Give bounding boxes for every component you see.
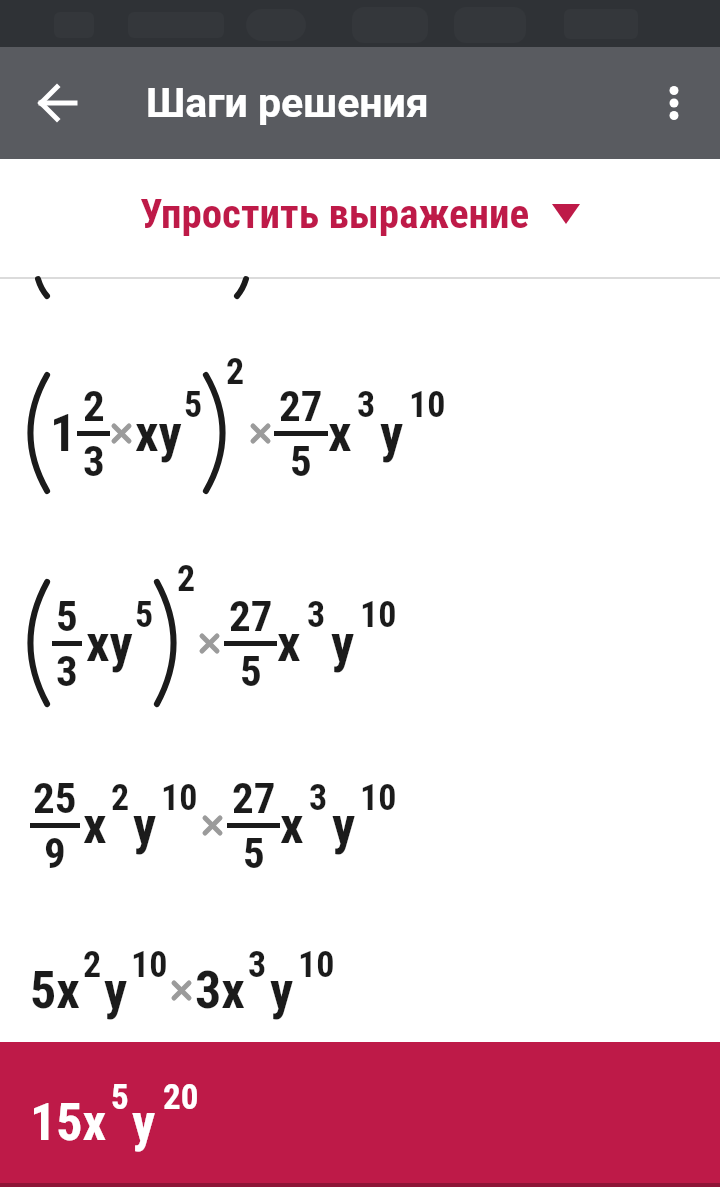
staticText: 27 [232, 773, 276, 823]
staticText: 25 [33, 773, 77, 823]
staticText: 10 [360, 777, 397, 819]
staticText: 27 [229, 591, 273, 641]
staticText: 5 [290, 436, 312, 486]
staticText: 10 [409, 384, 446, 426]
staticText: x [277, 613, 301, 674]
staticText: Упростить выражение [140, 190, 530, 238]
staticText: 3 [83, 436, 105, 486]
button[interactable] [652, 81, 696, 125]
staticText: y [380, 403, 404, 464]
staticText: x [328, 403, 352, 464]
staticText: 5 [111, 1077, 129, 1118]
staticText: 3 [309, 777, 328, 819]
staticText: 3 [248, 944, 267, 986]
staticText: Шаги решения [146, 79, 429, 127]
staticText: y [270, 960, 294, 1021]
staticText: xy [135, 403, 182, 464]
staticText: 9 [44, 828, 66, 878]
staticText: 20 [163, 1077, 199, 1118]
staticText: 10 [161, 777, 198, 819]
staticText: 10 [360, 594, 397, 636]
staticText: y [331, 613, 355, 674]
staticText: 2 [111, 777, 130, 819]
staticText: 3 [357, 384, 376, 426]
staticText: y [332, 795, 356, 856]
staticText: 10 [298, 944, 335, 986]
staticText: 3x [195, 960, 245, 1021]
staticText: y [132, 1092, 156, 1153]
staticText: 27 [279, 381, 323, 431]
staticText: 15x [30, 1092, 107, 1153]
staticText: 2 [83, 944, 102, 986]
staticText: 5 [243, 828, 265, 878]
staticText: x [83, 795, 107, 856]
staticText: 5 [184, 384, 203, 426]
staticText: 2 [83, 381, 105, 431]
staticText: 10 [131, 944, 168, 986]
staticText: 5x [30, 960, 80, 1021]
staticText: 1 [50, 403, 77, 464]
staticText: y [133, 795, 157, 856]
staticText: xy [86, 613, 133, 674]
staticText: 5 [135, 594, 154, 636]
button[interactable]: Упростить выражение [0, 183, 720, 245]
staticText: 3 [307, 594, 326, 636]
staticText: 3 [56, 646, 78, 696]
staticText: x [280, 795, 304, 856]
button[interactable]: 15x [0, 1042, 720, 1187]
staticText: 5 [240, 646, 262, 696]
staticText: 2 [226, 351, 245, 393]
button[interactable] [30, 75, 86, 131]
staticText: 5 [56, 591, 78, 641]
staticText: y [104, 960, 128, 1021]
staticText: 2 [177, 558, 196, 600]
